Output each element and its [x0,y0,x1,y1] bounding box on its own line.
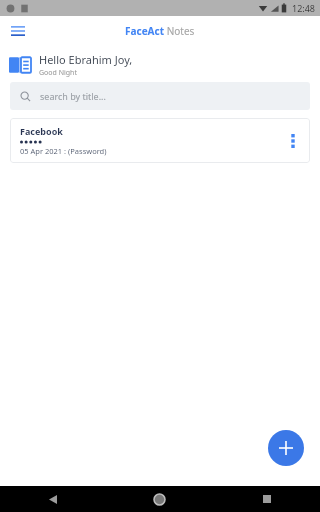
button[interactable]: Facebook [10,118,310,163]
button[interactable]: Home [106,486,213,512]
button[interactable]: Add note [268,430,304,466]
button[interactable]: Recent apps [213,486,320,512]
staticText: Good Night [39,68,77,78]
staticText: FaceAct Notes [125,24,195,38]
button[interactable]: More options [282,130,304,152]
staticText: Facebook [20,125,63,137]
button[interactable]: Open navigation menu [6,19,30,43]
button[interactable]: search by title... [10,82,310,110]
staticText: 05 Apr 2021 : (Password) [20,146,107,156]
staticText: Hello Ebrahim Joy, [39,52,133,67]
staticText: 12:48 [292,2,316,14]
staticText: search by title... [40,90,106,102]
button[interactable]: Back [0,486,106,512]
